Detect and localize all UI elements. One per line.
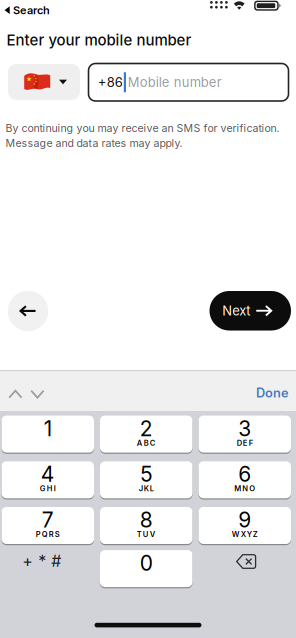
staticText: T U V: [137, 530, 156, 539]
staticText: A B C: [137, 438, 156, 447]
staticText: Next: [222, 303, 250, 319]
staticText: Message and data rates may apply.: [5, 137, 182, 149]
button[interactable]: 0: [100, 549, 192, 588]
staticText: 7: [42, 507, 54, 533]
button[interactable]: 5: [100, 461, 192, 499]
button[interactable]: 7: [1, 506, 94, 545]
button[interactable]: Select country code: [8, 64, 80, 100]
staticText: 9: [238, 507, 251, 533]
staticText: + * #: [22, 551, 61, 571]
staticText: 1: [44, 416, 52, 441]
button[interactable]: Delete: [198, 549, 291, 586]
button[interactable]: Back to Search: [0, 1, 50, 19]
staticText: 4: [41, 461, 55, 487]
staticText: 3: [238, 416, 251, 441]
staticText: Enter your mobile number: [6, 31, 191, 49]
staticText: D E F: [237, 438, 253, 447]
staticText: Done: [256, 385, 289, 400]
staticText: W X Y Z: [232, 530, 258, 539]
button[interactable]: Mobile number: [88, 63, 288, 101]
button[interactable]: Back: [8, 291, 48, 331]
staticText: 5: [140, 461, 152, 487]
button[interactable]: 1: [1, 415, 94, 453]
button[interactable]: Done: [250, 382, 295, 403]
button[interactable]: 6: [198, 461, 291, 499]
button[interactable]: Previous field: [5, 386, 26, 402]
staticText: J K L: [139, 484, 154, 493]
staticText: 2: [140, 416, 153, 441]
staticText: 6: [238, 461, 251, 487]
button[interactable]: 3: [198, 415, 291, 453]
staticText: Search: [13, 3, 50, 17]
staticText: +86: [98, 74, 123, 90]
staticText: G H I: [40, 484, 56, 493]
button[interactable]: Symbols: [1, 549, 94, 586]
button[interactable]: 4: [1, 461, 94, 499]
staticText: 0: [140, 550, 153, 576]
button[interactable]: 9: [198, 506, 291, 545]
staticText: M N O: [234, 484, 255, 493]
staticText: P Q R S: [36, 530, 60, 539]
button[interactable]: Next field: [27, 386, 48, 402]
staticText: By continuing you may receive an SMS for…: [5, 122, 279, 134]
button[interactable]: Next: [209, 291, 291, 330]
staticText: 8: [140, 507, 153, 533]
button[interactable]: 8: [100, 506, 192, 545]
staticText: Mobile number: [128, 74, 222, 90]
button[interactable]: 2: [100, 415, 192, 453]
